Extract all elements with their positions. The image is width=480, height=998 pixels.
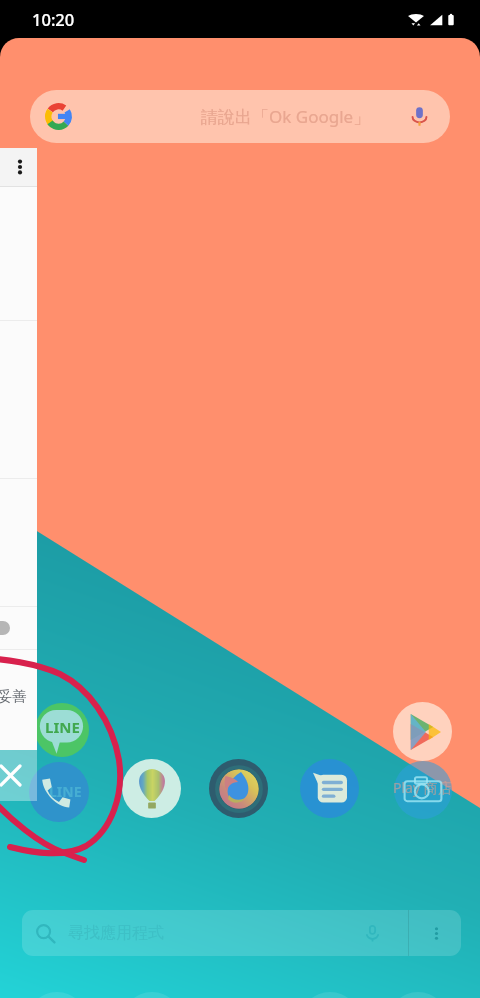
button[interactable]: Toggle — [0, 621, 10, 635]
other: More options — [428, 925, 445, 942]
staticText: 妥善 — [0, 688, 26, 706]
button[interactable]: LINE Call — [29, 762, 89, 822]
button[interactable]: 請說出「Ok Google」 — [30, 90, 450, 143]
other: Voice search — [409, 106, 430, 127]
other: More options — [12, 159, 28, 175]
button[interactable]: LINE — [35, 703, 89, 757]
staticText: LINE — [49, 782, 82, 801]
staticText: LINE — [45, 717, 80, 737]
button[interactable]: Close — [0, 750, 37, 801]
button[interactable]: Camera — [394, 761, 452, 819]
staticText: 請說出「Ok Google」 — [201, 105, 371, 128]
button[interactable]: Messages — [300, 759, 359, 818]
button[interactable]: Balloon app — [122, 759, 181, 818]
button[interactable]: Play Store — [393, 702, 452, 761]
button[interactable]: 尋找應用程式 — [22, 910, 461, 956]
other: Voice search — [363, 924, 382, 943]
staticText: 尋找應用程式 — [68, 923, 164, 943]
staticText: 10:20 — [32, 8, 75, 30]
staticText: Play 商店 — [393, 778, 452, 797]
button[interactable]: Firefox — [209, 759, 268, 818]
